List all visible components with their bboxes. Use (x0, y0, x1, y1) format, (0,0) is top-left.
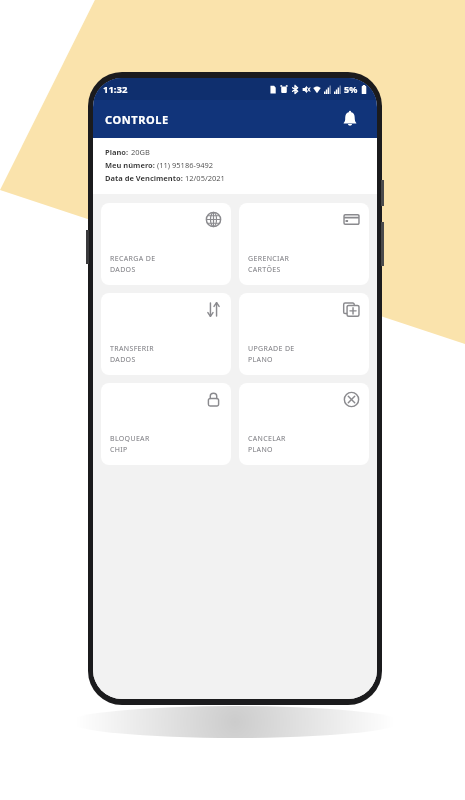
button[interactable]: RECARGA DE DADOS (101, 203, 231, 285)
staticText: 12/05/2021 (185, 173, 225, 183)
button[interactable]: CANCELAR PLANO (239, 383, 369, 465)
button[interactable]: TRANSFERIR DADOS (101, 293, 231, 375)
staticText: Data de Vencimento: (105, 173, 185, 183)
staticText: BLOQUEAR CHIP (110, 434, 150, 454)
button[interactable]: GERENCIAR CARTÕES (239, 203, 369, 285)
button[interactable]: Notificações (335, 104, 365, 134)
staticText: CANCELAR PLANO (248, 434, 286, 454)
staticText: 11:32 (103, 83, 128, 96)
staticText: RECARGA DE DADOS (110, 254, 156, 274)
staticText: Meu número: (105, 160, 157, 170)
button[interactable]: UPGRADE DE PLANO (239, 293, 369, 375)
staticText: CONTROLE (105, 112, 169, 127)
staticText: Plano: (105, 147, 131, 157)
staticText: UPGRADE DE PLANO (248, 344, 295, 364)
staticText: 20GB (131, 147, 150, 157)
staticText: TRANSFERIR DADOS (110, 344, 154, 364)
button[interactable]: BLOQUEAR CHIP (101, 383, 231, 465)
staticText: GERENCIAR CARTÕES (248, 254, 290, 274)
staticText: (11) 95186-9492 (157, 160, 214, 170)
staticText: 5% (344, 83, 358, 95)
